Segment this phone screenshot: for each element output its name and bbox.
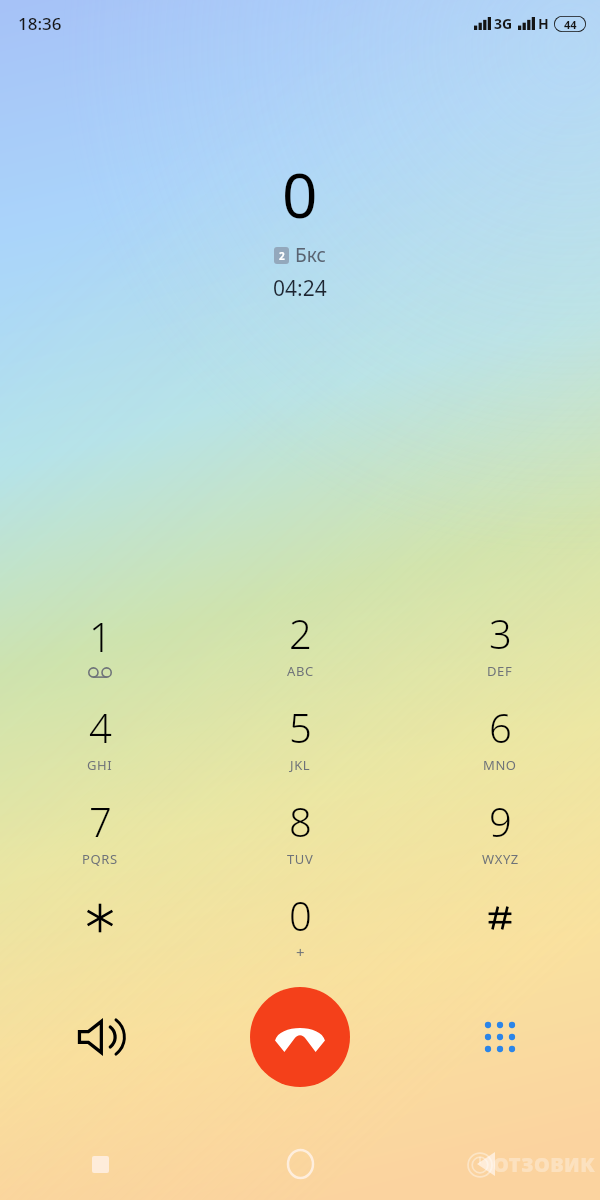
staticText: 0 — [282, 152, 318, 236]
button[interactable]: 1 — [0, 596, 200, 690]
button[interactable]: Keypad — [400, 972, 600, 1102]
button[interactable]: 5 — [200, 690, 400, 784]
staticText: 44 — [564, 17, 577, 32]
button[interactable]: 4 — [0, 690, 200, 784]
staticText: 8 — [289, 794, 312, 848]
staticText: + — [296, 942, 306, 962]
staticText: 7 — [89, 794, 112, 848]
staticText: ОТЗОВИК — [493, 1151, 596, 1178]
staticText: 9 — [489, 794, 512, 848]
staticText: PQRS — [82, 850, 118, 868]
button[interactable]: 9 — [400, 784, 600, 878]
staticText: 6 — [489, 700, 512, 754]
staticText: 18:36 — [18, 12, 62, 35]
button[interactable]: Home — [200, 1128, 400, 1200]
button[interactable]: 0 — [200, 878, 400, 972]
button[interactable]: Back — [400, 1128, 600, 1200]
staticText: 4 — [89, 700, 112, 754]
staticText: MNO — [483, 756, 517, 774]
button[interactable]: 3 — [400, 596, 600, 690]
staticText: 1 — [89, 609, 112, 663]
staticText: DEF — [487, 662, 513, 680]
staticText: 04:24 — [273, 274, 327, 303]
staticText: JKL — [290, 756, 311, 774]
staticText: ABC — [287, 662, 314, 680]
button[interactable]: 2 — [200, 596, 400, 690]
staticText: 0 — [289, 888, 312, 942]
staticText: TUV — [287, 850, 314, 868]
staticText: 3G — [494, 14, 513, 33]
button[interactable]: 7 — [0, 784, 200, 878]
staticText: 2 — [279, 249, 285, 263]
button[interactable]: 6 — [400, 690, 600, 784]
staticText: 5 — [289, 700, 312, 754]
button[interactable]: Speaker — [0, 972, 200, 1102]
button[interactable] — [0, 878, 200, 972]
button[interactable]: Recents — [0, 1128, 200, 1200]
button[interactable]: 8 — [200, 784, 400, 878]
staticText: H — [538, 14, 549, 33]
staticText: 2 — [289, 606, 312, 660]
button[interactable] — [400, 878, 600, 972]
button[interactable]: End call — [250, 987, 350, 1087]
staticText: WXYZ — [482, 850, 519, 868]
staticText: GHI — [87, 756, 113, 774]
staticText: Бкс — [295, 242, 326, 268]
staticText: 3 — [489, 606, 512, 660]
